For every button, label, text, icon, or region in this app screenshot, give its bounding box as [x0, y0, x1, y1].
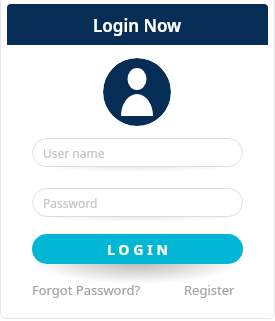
staticText: Login Now	[93, 14, 182, 37]
button[interactable]: Forgot Password?	[32, 281, 141, 299]
staticText: User name	[43, 145, 105, 161]
button[interactable]: User name	[32, 138, 243, 167]
staticText: LOGIN	[107, 240, 172, 259]
button[interactable]: Login Now	[7, 4, 268, 45]
button[interactable]	[103, 58, 171, 126]
button[interactable]: Register	[184, 281, 235, 299]
button[interactable]: Password	[32, 188, 243, 217]
staticText: Password	[43, 195, 98, 211]
button[interactable]: LOGIN	[32, 234, 243, 264]
